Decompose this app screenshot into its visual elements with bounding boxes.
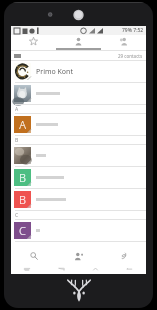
button[interactable]: C <box>11 220 146 242</box>
staticText: C <box>19 223 26 238</box>
staticText: B <box>19 192 26 207</box>
button[interactable]: B <box>11 189 146 211</box>
staticText: C <box>15 212 19 219</box>
staticText: Primo Kont <box>36 67 73 77</box>
staticText: 79% 7:52 <box>122 27 144 34</box>
button[interactable]: Contacts <box>56 35 101 48</box>
button[interactable]: Groups <box>101 35 146 48</box>
button[interactable]: Search <box>11 249 56 263</box>
staticText: A <box>15 106 19 113</box>
button[interactable]: Favorites <box>11 35 56 48</box>
button[interactable]: A <box>11 114 146 136</box>
button[interactable]: Menu <box>44 263 78 274</box>
button[interactable]: Add contact <box>56 249 101 263</box>
button[interactable]: Home <box>78 263 112 274</box>
button[interactable]: More options <box>101 249 146 263</box>
staticText: B <box>15 137 19 144</box>
button[interactable]: Primo Kont <box>11 61 146 83</box>
button[interactable]: Recents <box>11 263 44 274</box>
button[interactable]: Back <box>112 263 146 274</box>
button[interactable]: B <box>11 167 146 189</box>
staticText: 29 contacts <box>118 53 143 59</box>
button[interactable] <box>11 83 146 105</box>
button[interactable] <box>11 145 146 167</box>
staticText: B <box>19 170 26 185</box>
staticText: A <box>19 117 26 132</box>
